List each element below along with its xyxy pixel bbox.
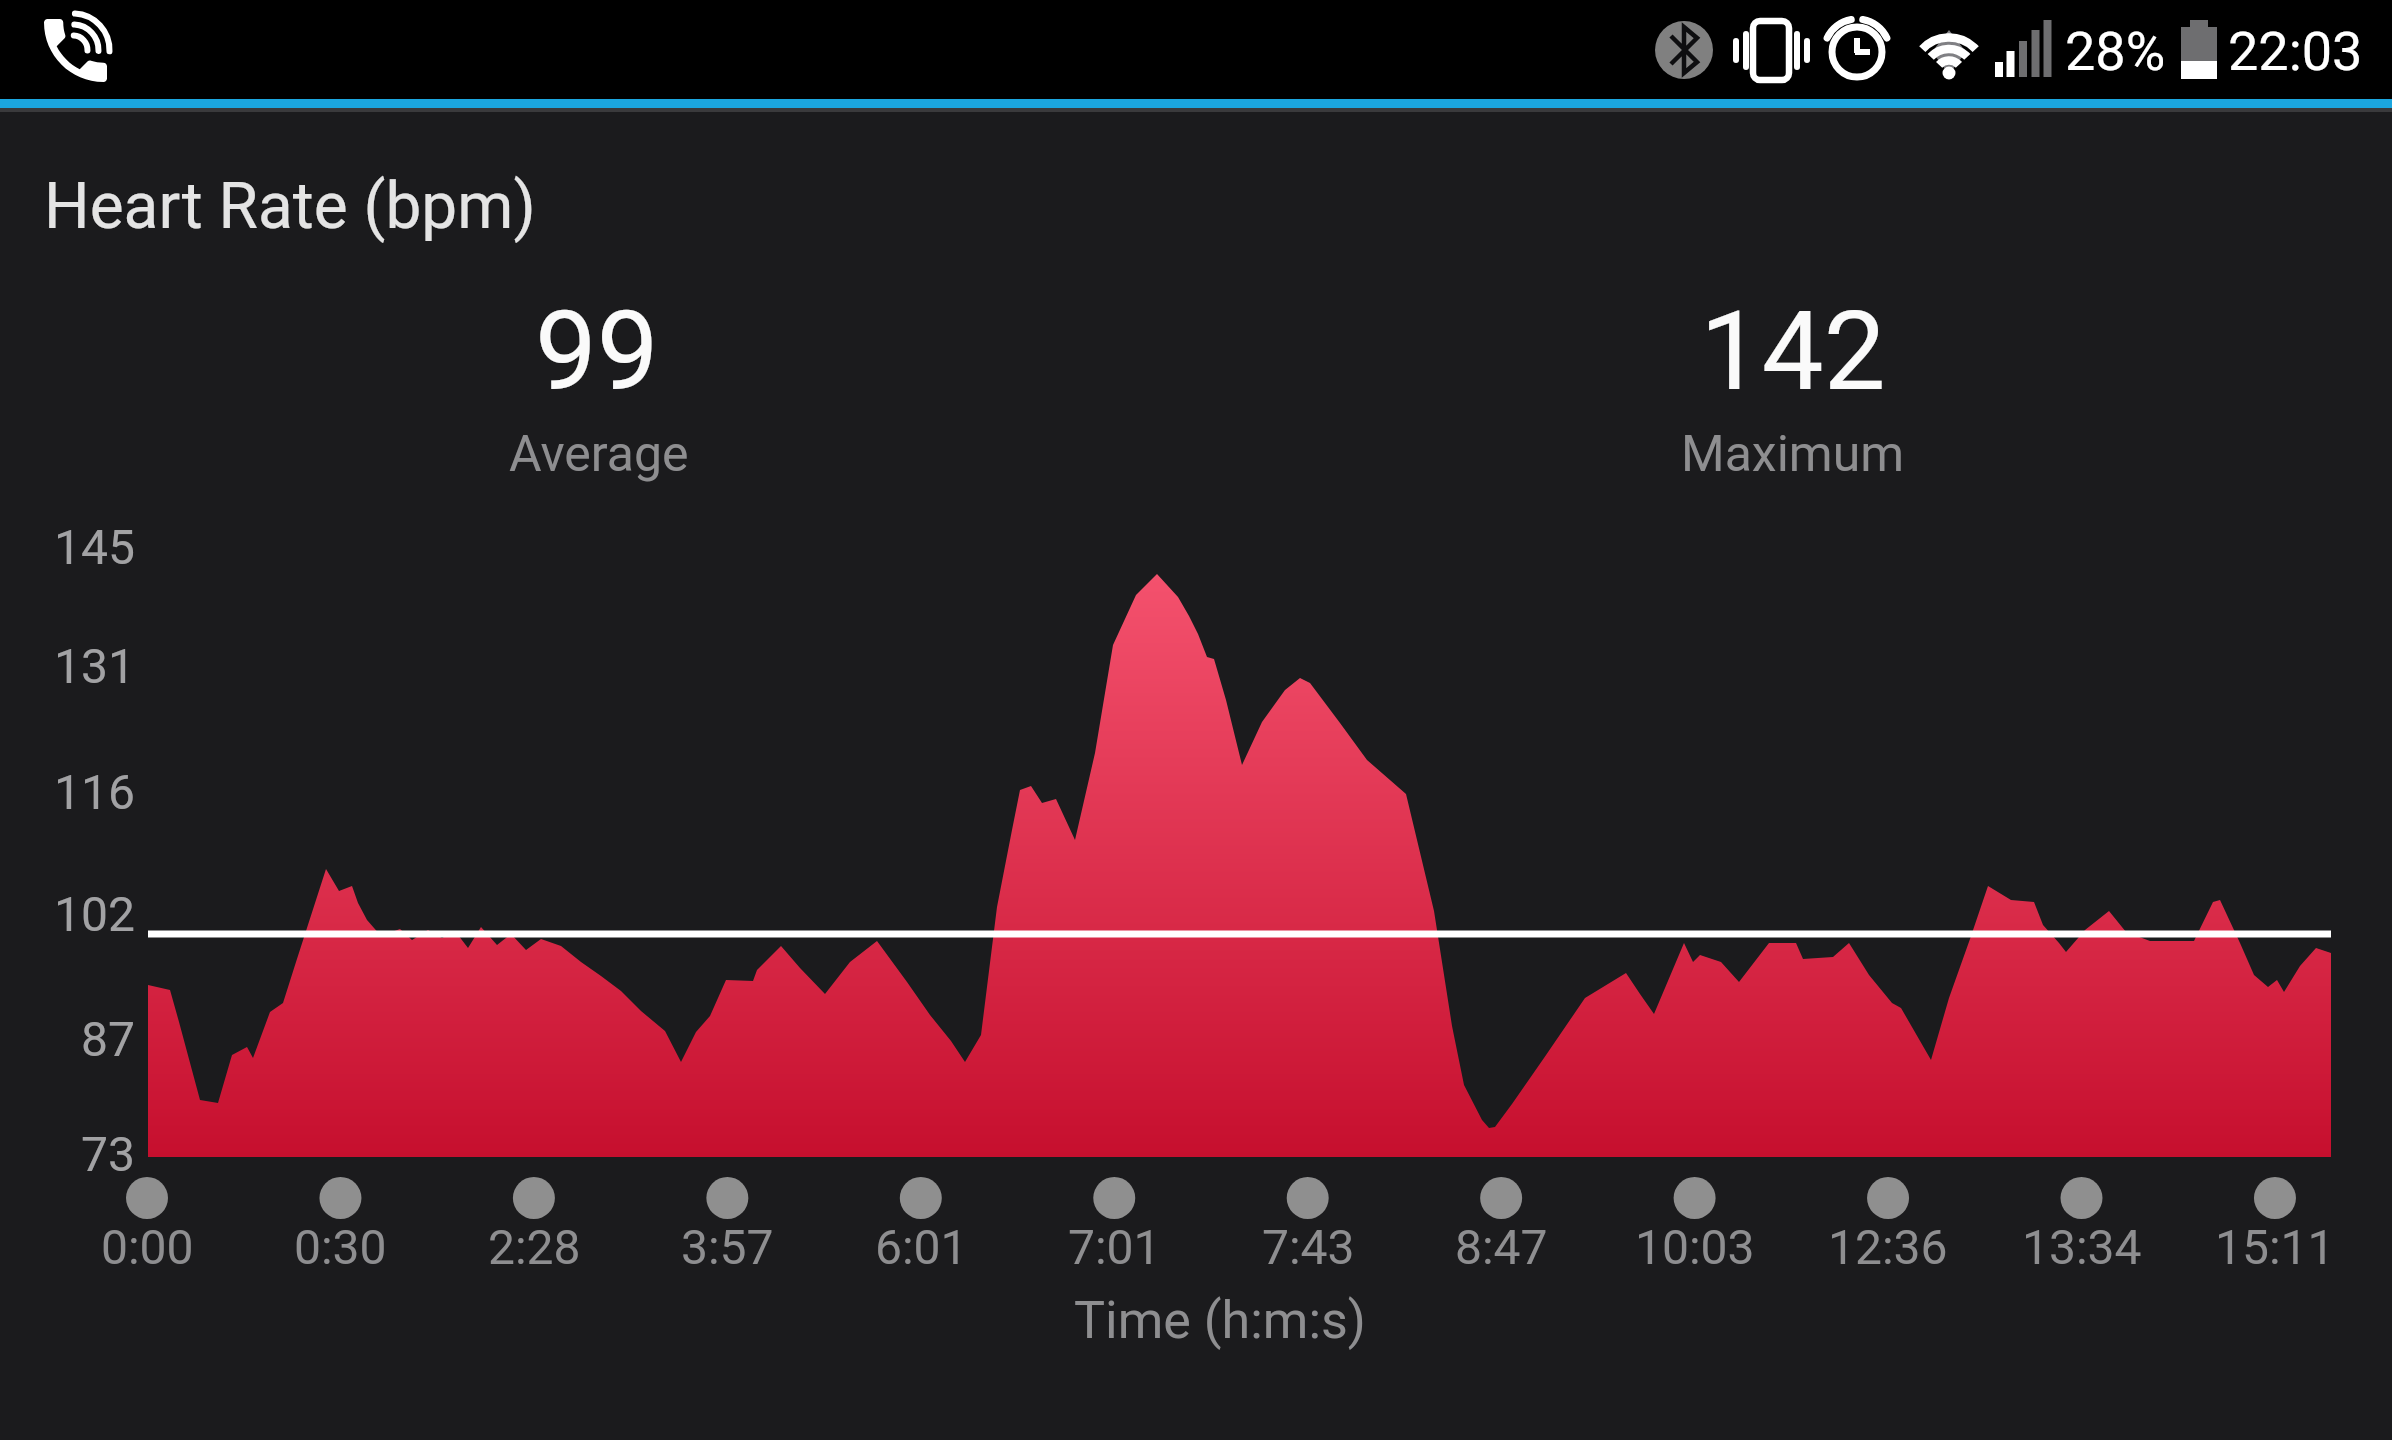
staticText: 22:03 <box>2228 20 2363 83</box>
staticText: 8:47 <box>1455 1219 1548 1275</box>
staticText: Heart Rate (bpm) <box>44 169 536 244</box>
staticText: 0:30 <box>294 1219 387 1275</box>
staticText: Average <box>509 425 689 484</box>
staticText: 99 <box>535 287 659 416</box>
staticText: 2:28 <box>488 1219 581 1275</box>
staticText: 116 <box>54 764 135 820</box>
staticText: 87 <box>81 1011 135 1067</box>
staticText: 15:11 <box>2215 1219 2335 1275</box>
staticText: Maximum <box>1681 425 1905 484</box>
staticText: 10:03 <box>1635 1219 1755 1275</box>
staticText: 28% <box>2065 20 2166 83</box>
staticText: 131 <box>54 638 135 694</box>
staticText: 13:34 <box>2022 1219 2142 1275</box>
staticText: 7:43 <box>1262 1219 1355 1275</box>
staticText: 0:00 <box>101 1219 194 1275</box>
staticText: Time (h:m:s) <box>1074 1290 1366 1351</box>
staticText: 7:01 <box>1068 1219 1161 1275</box>
staticText: 145 <box>54 519 135 575</box>
staticText: 12:36 <box>1828 1219 1948 1275</box>
staticText: 73 <box>81 1126 135 1182</box>
staticText: 6:01 <box>875 1219 968 1275</box>
staticText: 3:57 <box>681 1219 774 1275</box>
staticText: 102 <box>54 886 135 942</box>
staticText: 142 <box>1700 287 1886 416</box>
